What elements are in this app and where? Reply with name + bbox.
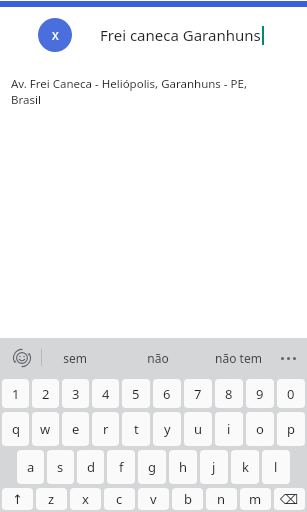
button[interactable]: 8 [215,379,243,408]
staticText: s [57,458,64,476]
button[interactable]: 6 [153,379,181,408]
button[interactable]: g [138,450,166,484]
button[interactable]: w [32,412,59,446]
button[interactable]: m [240,488,271,510]
button[interactable]: Emoji [9,345,35,371]
button[interactable]: u [184,412,212,446]
staticText: ↑ [12,492,23,507]
staticText: 7 [194,385,202,403]
staticText: 1 [12,385,20,403]
staticText: c [116,490,123,508]
button[interactable]: x [70,488,101,510]
staticText: X [52,28,59,43]
staticText: v [150,490,157,508]
button[interactable]: 1 [2,379,29,408]
staticText: b [184,490,192,508]
button[interactable]: v [138,488,169,510]
button[interactable]: 2 [32,379,59,408]
button[interactable]: i [215,412,243,446]
button[interactable]: não tem [204,338,272,377]
button[interactable]: ↑ [2,488,33,510]
button[interactable]: z [36,488,67,510]
button[interactable]: j [200,450,228,484]
staticText: l [274,458,278,476]
staticText: q [12,420,20,438]
button[interactable]: e [62,412,89,446]
staticText: m [249,490,262,508]
staticText: w [40,420,51,438]
staticText: 8 [225,385,233,403]
button[interactable]: 9 [246,379,274,408]
button[interactable]: sem [41,338,109,377]
button[interactable]: 4 [92,379,119,408]
button[interactable]: f [107,450,135,484]
button[interactable]: k [231,450,259,484]
staticText: 0 [287,385,295,403]
staticText: 3 [72,385,80,403]
staticText: sem [63,350,87,366]
button[interactable]: n [206,488,237,510]
button[interactable]: ⌫ [274,488,305,510]
staticText: 5 [132,385,140,403]
button[interactable]: não [124,338,192,377]
staticText: y [164,420,171,438]
button[interactable]: y [153,412,181,446]
staticText: r [103,420,109,438]
button[interactable]: b [172,488,203,510]
staticText: o [256,420,264,438]
staticText: 2 [42,385,50,403]
button[interactable]: 7 [184,379,212,408]
staticText: j [212,458,216,476]
button[interactable]: 5 [122,379,150,408]
staticText: a [27,458,35,476]
button[interactable]: a [17,450,44,484]
staticText: d [87,458,95,476]
button[interactable]: p [277,412,305,446]
button[interactable]: o [246,412,274,446]
staticText: Brasil [11,92,41,108]
button[interactable]: r [92,412,119,446]
button[interactable]: d [77,450,104,484]
staticText: Av. Frei Caneca - Heliópolis, Garanhuns … [11,76,247,92]
staticText: k [242,458,249,476]
staticText: h [179,458,188,476]
staticText: 4 [102,385,110,403]
button[interactable]: h [169,450,197,484]
staticText: 9 [256,385,264,403]
staticText: não [147,350,169,366]
staticText: 6 [163,385,171,403]
staticText: t [134,420,139,438]
button[interactable]: c [104,488,135,510]
staticText: e [72,420,80,438]
staticText: ⌫ [280,492,299,507]
staticText: p [287,420,295,438]
staticText: Frei caneca Garanhuns [100,25,261,45]
staticText: n [217,490,226,508]
staticText: não tem [215,350,262,366]
button[interactable]: q [2,412,29,446]
button[interactable]: More suggestions [276,346,300,370]
button[interactable]: 3 [62,379,89,408]
button[interactable]: l [262,450,290,484]
staticText: i [227,420,231,438]
button[interactable]: 0 [277,379,305,408]
staticText: x [82,490,89,508]
staticText: g [148,458,156,476]
button[interactable]: t [122,412,150,446]
staticText: f [119,458,124,476]
staticText: u [194,420,203,438]
staticText: z [48,490,55,508]
button[interactable]: s [47,450,74,484]
button[interactable]: Close [38,18,72,52]
